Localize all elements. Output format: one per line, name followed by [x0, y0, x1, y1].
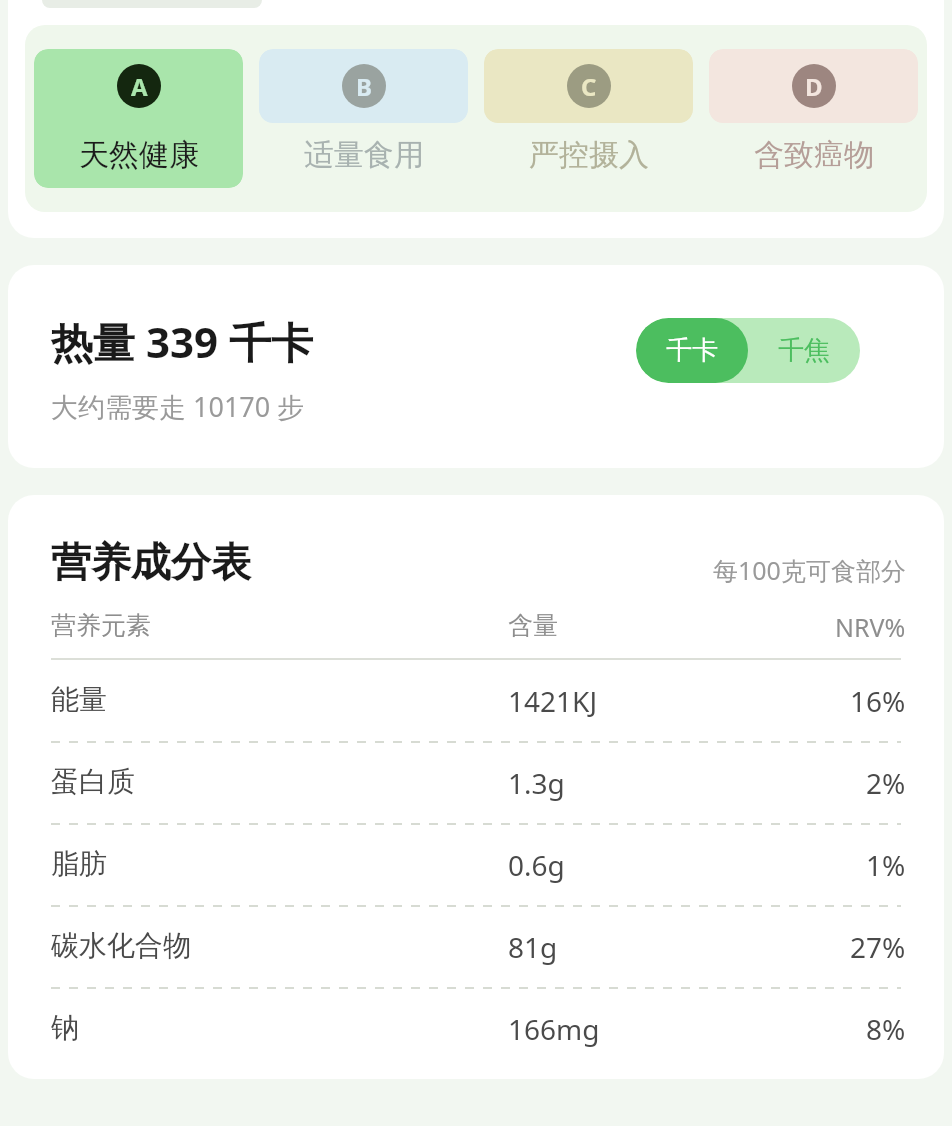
staticText: C [581, 70, 597, 103]
button[interactable]: 千卡 [636, 318, 748, 383]
staticText: A [131, 70, 148, 103]
button[interactable]: 千卡 [636, 318, 860, 383]
staticText: 能量 [51, 682, 107, 717]
button[interactable]: 千焦 [748, 318, 860, 383]
staticText: 热量 339 千卡 [51, 313, 313, 370]
staticText: 适量食用 [304, 136, 424, 174]
staticText: 脂肪 [51, 846, 107, 881]
staticText: D [805, 70, 823, 103]
staticText: 81g [508, 928, 558, 966]
button[interactable]: B [259, 49, 468, 188]
button[interactable]: C [484, 49, 693, 188]
staticText: 千卡 [666, 334, 718, 367]
button[interactable]: D [709, 49, 918, 188]
staticText: 含量 [508, 610, 558, 641]
staticText: 营养成分表 [51, 537, 251, 587]
staticText: NRV% [835, 610, 906, 644]
staticText: 大约需要走 10170 步 [51, 388, 305, 425]
staticText: 每100克可食部分 [713, 553, 906, 587]
staticText: 8% [866, 1010, 906, 1048]
staticText: 1.3g [508, 764, 565, 802]
staticText: 钠 [51, 1010, 79, 1045]
staticText: 166mg [508, 1010, 600, 1048]
staticText: 2% [866, 764, 906, 802]
button[interactable]: A [34, 49, 243, 188]
staticText: 千焦 [778, 334, 830, 367]
staticText: 碳水化合物 [51, 928, 191, 963]
staticText: B [356, 70, 372, 103]
staticText: 16% [850, 682, 906, 720]
staticText: 1421KJ [508, 682, 598, 720]
staticText: 0.6g [508, 846, 565, 884]
staticText: 1% [866, 846, 906, 884]
staticText: 27% [850, 928, 906, 966]
staticText: 严控摄入 [529, 136, 649, 174]
staticText: 蛋白质 [51, 764, 135, 799]
staticText: 含致癌物 [754, 136, 874, 174]
staticText: 天然健康 [79, 136, 199, 174]
staticText: 营养元素 [51, 610, 151, 641]
